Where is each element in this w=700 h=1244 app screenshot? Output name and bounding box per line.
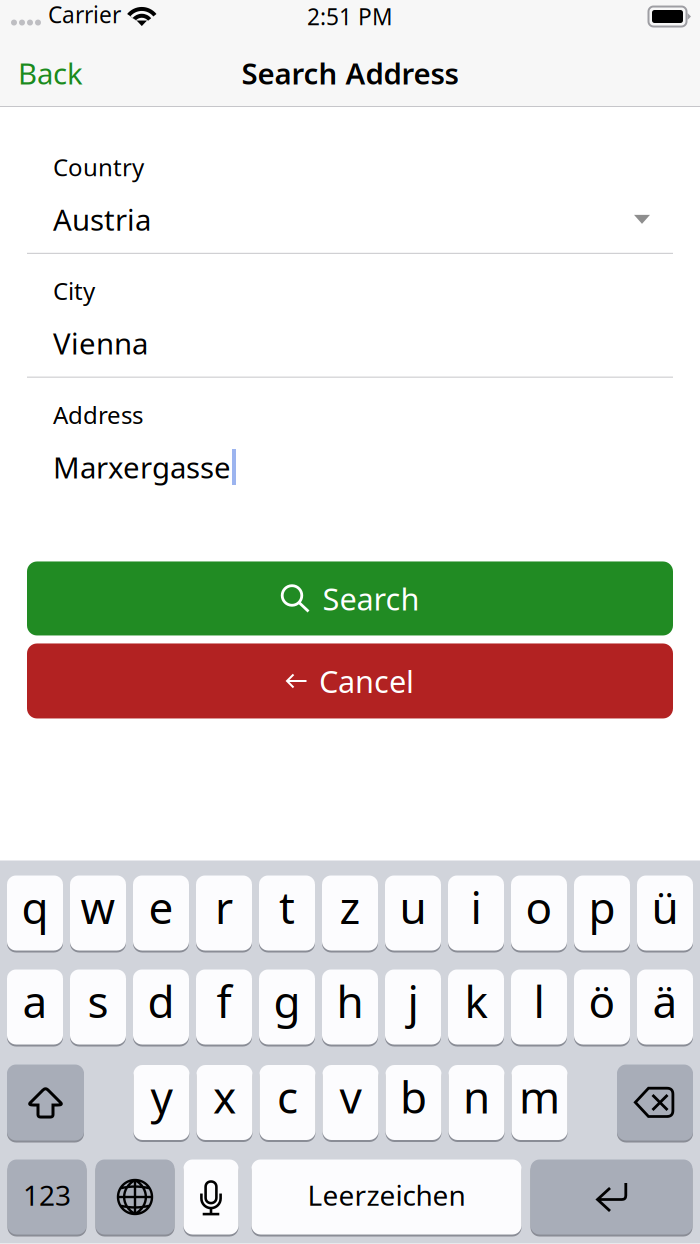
button[interactable]: Cancel	[0, 643, 700, 718]
staticText: Cancel	[319, 661, 414, 701]
button[interactable]: d	[133, 969, 189, 1046]
staticText: m	[519, 1067, 560, 1126]
button[interactable]: Next keyboard	[95, 1159, 174, 1236]
staticText: o	[525, 878, 552, 936]
button[interactable]: t	[259, 875, 315, 952]
staticText: a	[22, 972, 47, 1030]
button[interactable]: b	[385, 1065, 441, 1142]
button[interactable]: z	[322, 875, 378, 952]
staticText: n	[463, 1067, 490, 1126]
button[interactable]: u	[385, 875, 441, 952]
button[interactable]: m	[511, 1065, 567, 1142]
staticText: p	[588, 878, 615, 936]
staticText: Back	[18, 53, 83, 92]
staticText: y	[150, 1067, 172, 1126]
staticText: z	[339, 878, 360, 936]
button[interactable]: o	[511, 875, 567, 952]
button[interactable]: p	[574, 875, 630, 952]
staticText: x	[213, 1067, 236, 1126]
staticText: Leerzeichen	[307, 1176, 465, 1214]
button[interactable]: a	[7, 969, 63, 1046]
button[interactable]: e	[133, 875, 189, 952]
staticText: i	[470, 878, 481, 936]
button[interactable]: n	[448, 1065, 504, 1142]
staticText: s	[87, 972, 108, 1030]
staticText: Vienna	[53, 324, 148, 363]
staticText: c	[277, 1067, 298, 1126]
button[interactable]: Shift	[7, 1064, 84, 1142]
button[interactable]: v	[322, 1065, 378, 1142]
staticText: ä	[652, 972, 677, 1030]
button[interactable]: i	[448, 875, 504, 952]
staticText: b	[400, 1067, 427, 1126]
staticText: h	[336, 972, 363, 1030]
staticText: Carrier	[48, 0, 121, 29]
staticText: Country	[53, 151, 144, 183]
staticText: Search	[322, 578, 419, 619]
button[interactable]: w	[70, 875, 126, 952]
button[interactable]: ä	[637, 969, 693, 1046]
staticText: City	[53, 275, 95, 307]
button[interactable]: q	[7, 875, 63, 952]
button[interactable]: ü	[637, 875, 693, 952]
button[interactable]: Dictate	[183, 1159, 238, 1236]
staticText: q	[21, 878, 48, 936]
staticText: k	[464, 972, 487, 1030]
button[interactable]: j	[385, 969, 441, 1046]
staticText: ü	[651, 878, 678, 936]
button[interactable]: 123	[7, 1159, 86, 1236]
staticText: ö	[588, 972, 615, 1030]
staticText: e	[148, 878, 173, 936]
button[interactable]: f	[196, 969, 252, 1046]
staticText: t	[279, 878, 295, 936]
button[interactable]: Leerzeichen	[251, 1159, 521, 1236]
button[interactable]: Return	[530, 1159, 692, 1236]
staticText: Address	[53, 399, 143, 431]
button[interactable]: h	[322, 969, 378, 1046]
staticText: l	[533, 972, 544, 1030]
button[interactable]: x	[196, 1065, 252, 1142]
button[interactable]: c	[259, 1065, 315, 1142]
staticText: u	[399, 878, 426, 936]
button[interactable]: Backspace	[617, 1064, 693, 1142]
staticText: Search Address	[241, 53, 458, 92]
button[interactable]: ö	[574, 969, 630, 1046]
staticText: 2:51 PM	[307, 1, 393, 31]
button[interactable]: r	[196, 875, 252, 952]
staticText: g	[273, 972, 300, 1030]
staticText: f	[216, 972, 231, 1030]
staticText: v	[339, 1067, 361, 1126]
staticText: j	[407, 972, 418, 1030]
staticText: Marxergasse	[53, 447, 231, 486]
button[interactable]: y	[133, 1065, 189, 1142]
staticText: d	[147, 972, 174, 1030]
staticText: w	[80, 878, 115, 936]
button[interactable]: l	[511, 969, 567, 1046]
staticText: Austria	[53, 200, 151, 239]
button[interactable]: Search	[0, 561, 700, 635]
staticText: r	[215, 878, 233, 936]
button[interactable]: k	[448, 969, 504, 1046]
button[interactable]: Back	[0, 41, 97, 104]
button[interactable]: s	[70, 969, 126, 1046]
staticText: 123	[23, 1176, 71, 1214]
button[interactable]: g	[259, 969, 315, 1046]
